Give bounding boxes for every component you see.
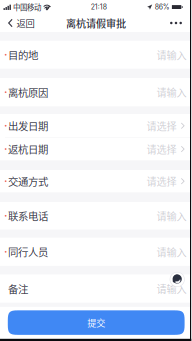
staticText: 目的地 bbox=[8, 47, 38, 62]
staticText: 请选择 bbox=[147, 174, 177, 189]
staticText: 请选择 bbox=[147, 118, 177, 133]
button[interactable]: Assistant bbox=[170, 272, 185, 287]
staticText: 请输入 bbox=[157, 281, 187, 296]
staticText: 请输入 bbox=[157, 47, 187, 62]
staticText: 离杭请假审批 bbox=[66, 16, 126, 30]
button[interactable]: 备注 bbox=[0, 275, 192, 303]
button[interactable]: 联系电话 bbox=[0, 202, 192, 229]
button[interactable]: 同行人员 bbox=[0, 238, 192, 266]
button[interactable]: 返回 bbox=[0, 14, 40, 32]
staticText: 请选择 bbox=[147, 142, 177, 156]
staticText: 86% bbox=[155, 3, 170, 11]
staticText: 请输入 bbox=[157, 208, 187, 223]
staticText: 备注 bbox=[8, 281, 28, 296]
staticText: 离杭原因 bbox=[8, 85, 48, 100]
staticText: 请输入 bbox=[157, 85, 187, 100]
staticText: 交通方式 bbox=[8, 174, 48, 189]
staticText: 请输入 bbox=[157, 244, 187, 259]
staticText: 中国移动 bbox=[13, 2, 41, 12]
button[interactable]: 离杭原因 bbox=[0, 78, 192, 106]
button[interactable]: 出发日期 bbox=[0, 114, 192, 137]
staticText: 提交 bbox=[87, 316, 105, 329]
staticText: 同行人员 bbox=[8, 244, 48, 259]
staticText: 21:18 bbox=[91, 3, 107, 11]
button[interactable]: 提交 bbox=[8, 310, 185, 335]
staticText: 联系电话 bbox=[8, 208, 48, 223]
staticText: 返杭日期 bbox=[8, 141, 48, 157]
staticText: 出发日期 bbox=[8, 118, 48, 133]
staticText: 返回 bbox=[16, 16, 34, 30]
button[interactable]: 返杭日期 bbox=[0, 138, 192, 160]
button[interactable]: 目的地 bbox=[0, 41, 192, 69]
button[interactable]: 交通方式 bbox=[0, 170, 192, 192]
button[interactable]: More options bbox=[162, 14, 192, 32]
